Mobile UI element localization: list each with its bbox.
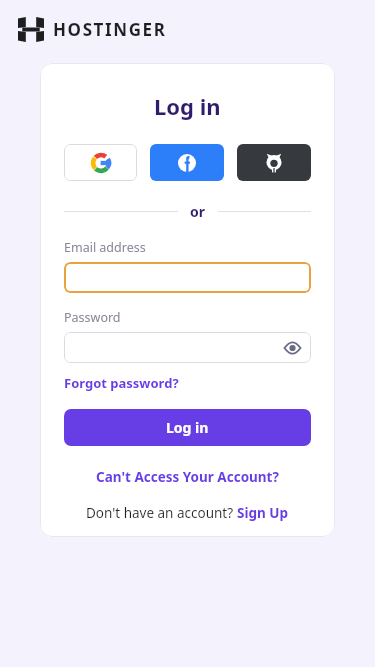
button[interactable]: Sign in with GitHub <box>237 144 311 181</box>
button[interactable]: Password input <box>64 332 311 363</box>
staticText: or <box>190 202 206 221</box>
button[interactable]: Log in <box>64 409 311 446</box>
staticText: Password <box>64 309 121 326</box>
staticText: Log in <box>154 91 221 121</box>
button[interactable]: Sign in with Facebook <box>150 144 224 181</box>
button[interactable]: Sign Up <box>237 504 289 522</box>
button[interactable]: Show password <box>279 335 305 361</box>
button[interactable]: Can't Access Your Account? <box>96 468 279 486</box>
staticText: Log in <box>166 418 209 437</box>
button[interactable]: Sign in with Google <box>64 144 137 181</box>
button[interactable]: Email address input <box>64 262 311 293</box>
staticText: HOSTINGER <box>53 18 167 41</box>
button[interactable]: Hostinger home <box>18 17 167 42</box>
staticText: Email address <box>64 239 146 256</box>
staticText: Don't have an account? <box>86 504 237 522</box>
button[interactable]: Forgot password? <box>64 374 179 392</box>
